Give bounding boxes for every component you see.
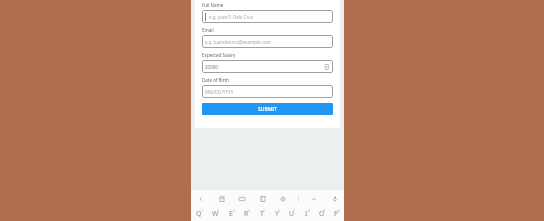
staticText: T bbox=[260, 209, 264, 219]
staticText: 6 bbox=[278, 208, 281, 213]
staticText: 0 bbox=[338, 208, 341, 213]
staticText: R bbox=[244, 209, 249, 219]
staticText: MM/DD/YYYY bbox=[205, 89, 234, 95]
staticText: 7 bbox=[293, 208, 296, 213]
staticText: SUBMIT bbox=[258, 106, 277, 113]
button[interactable]: T bbox=[254, 207, 269, 221]
button[interactable]: W bbox=[207, 207, 223, 221]
staticText: Email bbox=[202, 27, 214, 33]
staticText: 3 bbox=[233, 208, 236, 213]
button[interactable]: Minimize bbox=[308, 193, 319, 204]
button[interactable]: e.g. Juan P. Dela Cruz bbox=[202, 10, 333, 23]
staticText: e.g. juandelcruz@example.com bbox=[205, 39, 271, 45]
button[interactable]: 20000 bbox=[202, 60, 333, 73]
staticText: U bbox=[289, 209, 295, 219]
button[interactable]: Back bbox=[195, 193, 206, 204]
staticText: Y bbox=[275, 209, 279, 219]
button[interactable]: I bbox=[299, 207, 314, 221]
button[interactable]: R bbox=[239, 207, 254, 221]
staticText: 9 bbox=[323, 208, 326, 213]
button[interactable]: Translate bbox=[257, 193, 268, 204]
button[interactable]: P bbox=[329, 207, 344, 221]
button[interactable]: Q bbox=[191, 207, 207, 221]
button[interactable]: Y bbox=[269, 207, 284, 221]
staticText: e.g. Juan P. Dela Cruz bbox=[209, 14, 254, 20]
staticText: 2 bbox=[217, 208, 220, 213]
staticText: E bbox=[229, 209, 233, 219]
staticText: Expected Salary bbox=[202, 52, 236, 58]
button[interactable]: E bbox=[223, 207, 239, 221]
staticText: 4 bbox=[248, 208, 251, 213]
staticText: Full Name bbox=[202, 2, 224, 8]
button[interactable]: GIF bbox=[236, 193, 247, 204]
staticText: W bbox=[212, 209, 219, 219]
button[interactable]: MM/DD/YYYY bbox=[202, 85, 333, 98]
staticText: 20000 bbox=[205, 64, 218, 70]
button[interactable]: U bbox=[284, 207, 299, 221]
staticText: 5 bbox=[263, 208, 266, 213]
staticText: Q bbox=[196, 209, 202, 219]
button[interactable]: SUBMIT bbox=[202, 103, 333, 115]
button[interactable]: O bbox=[314, 207, 329, 221]
staticText: P bbox=[334, 209, 339, 219]
other: Salary info bbox=[324, 64, 330, 70]
button[interactable]: Settings bbox=[277, 193, 288, 204]
button[interactable]: Clipboard bbox=[216, 193, 227, 204]
staticText: 1 bbox=[201, 208, 204, 213]
staticText: I bbox=[305, 209, 308, 219]
staticText: O bbox=[319, 209, 325, 219]
button[interactable]: e.g. juandelcruz@example.com bbox=[202, 35, 333, 48]
staticText: Date of Birth bbox=[202, 77, 229, 83]
staticText: 8 bbox=[308, 208, 311, 213]
button[interactable]: Voice input bbox=[329, 193, 340, 204]
